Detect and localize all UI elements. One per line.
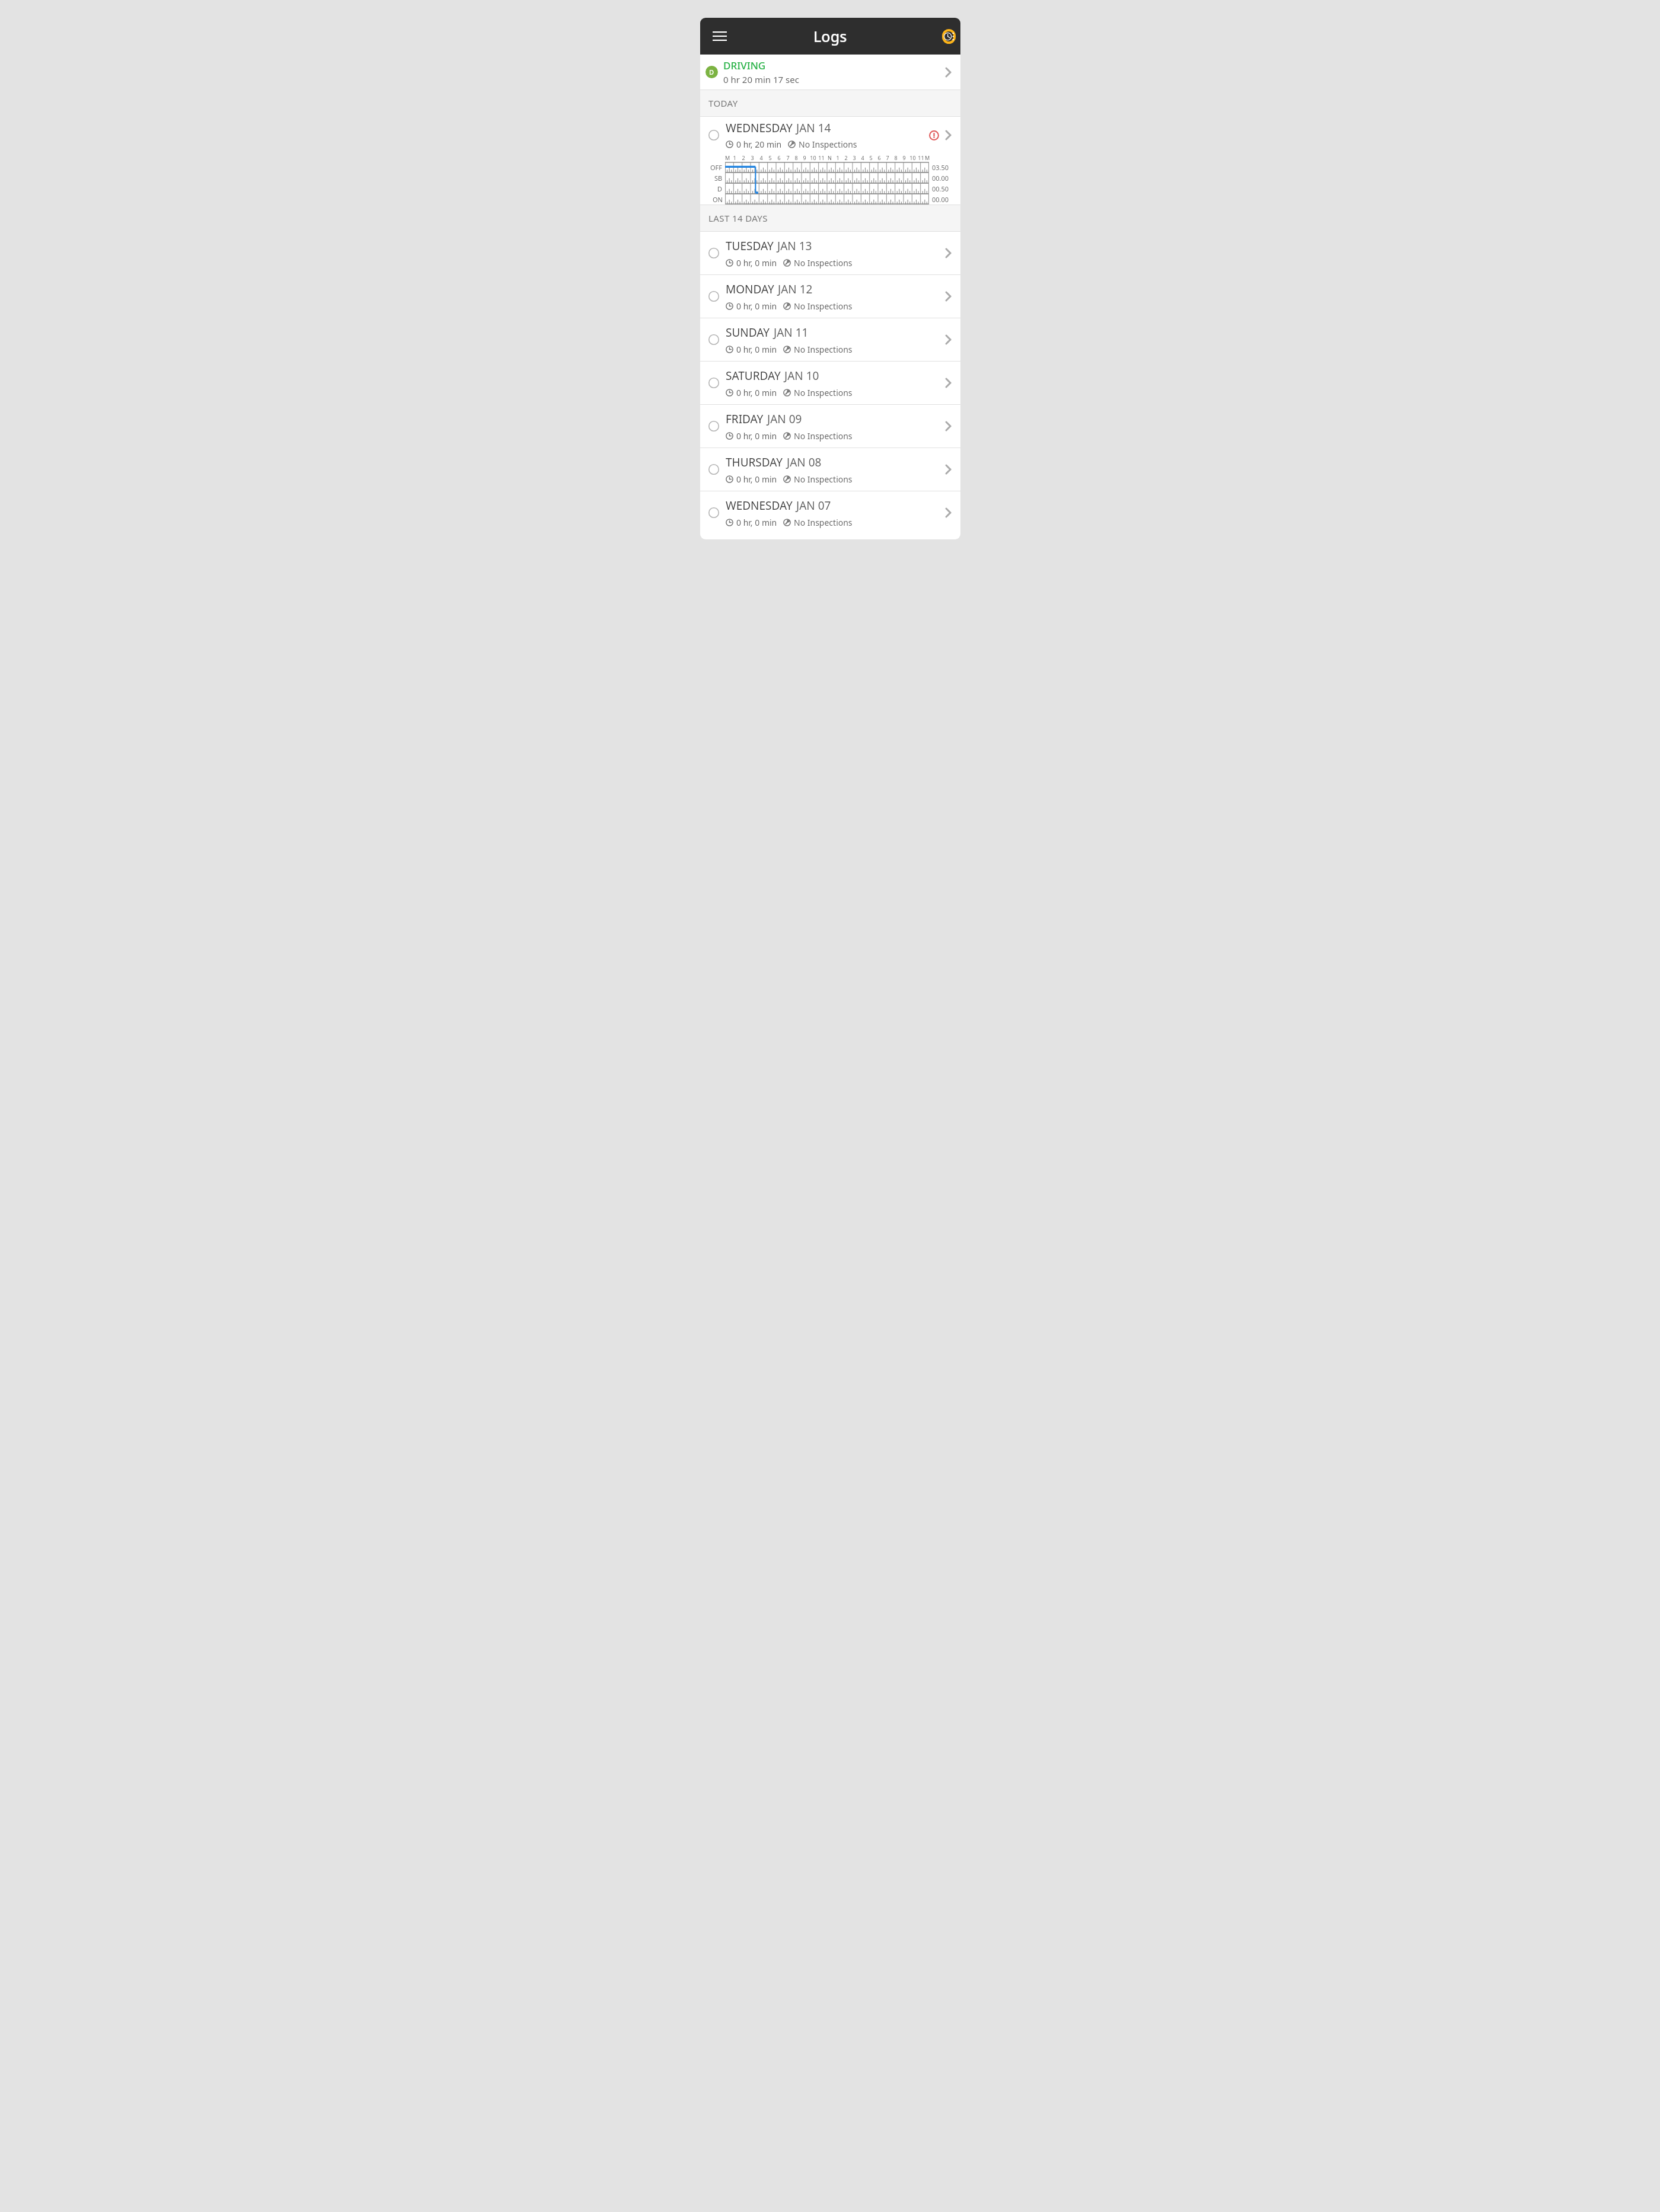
button[interactable]: Select day: [708, 130, 719, 140]
staticText: 00.50: [932, 184, 949, 193]
button[interactable]: Select day: [708, 507, 719, 518]
staticText: 7: [786, 154, 790, 161]
staticText: No Inspections: [794, 257, 853, 268]
button[interactable]: Select day: [700, 318, 960, 361]
staticText: 5: [768, 154, 772, 161]
staticText: 9: [902, 154, 906, 161]
staticText: TUESDAY: [726, 238, 774, 254]
button[interactable]: Select day: [708, 291, 719, 302]
staticText: No Inspections: [794, 430, 853, 442]
staticText: DRIVING: [723, 59, 766, 72]
staticText: JAN 13: [777, 238, 812, 254]
staticText: 2: [742, 154, 745, 161]
staticText: No Inspections: [794, 387, 853, 398]
button[interactable]: Select day: [700, 448, 960, 491]
staticText: SATURDAY: [726, 368, 781, 383]
staticText: SB: [714, 174, 723, 183]
staticText: No Inspections: [794, 301, 853, 312]
staticText: 0 hr, 0 min: [736, 430, 777, 442]
button[interactable]: Select day: [708, 248, 719, 258]
staticText: 0 hr, 0 min: [736, 387, 777, 398]
button[interactable]: Select day: [700, 405, 960, 447]
button[interactable]: Log history: [942, 29, 956, 44]
staticText: 7: [886, 154, 889, 161]
staticText: 11: [918, 154, 924, 161]
staticText: 8: [894, 154, 898, 161]
staticText: 4: [759, 154, 763, 161]
staticText: JAN 12: [778, 282, 813, 297]
staticText: JAN 08: [787, 455, 822, 470]
staticText: 00.00: [932, 195, 949, 204]
staticText: 10: [810, 154, 816, 161]
staticText: 00.00: [932, 174, 949, 183]
staticText: 0 hr, 0 min: [736, 517, 777, 528]
staticText: 0 hr, 0 min: [736, 474, 777, 485]
button[interactable]: Select day: [708, 378, 719, 388]
staticText: FRIDAY: [726, 411, 764, 427]
staticText: 0 hr, 0 min: [736, 301, 777, 312]
staticText: 10: [909, 154, 916, 161]
staticText: JAN 11: [774, 325, 809, 340]
staticText: 3: [751, 154, 754, 161]
staticText: TODAY: [708, 97, 738, 109]
staticText: D: [717, 184, 723, 193]
staticText: MONDAY: [726, 282, 774, 297]
button[interactable]: Select day: [700, 275, 960, 318]
staticText: JAN 07: [796, 498, 831, 513]
staticText: ON: [713, 195, 723, 204]
button[interactable]: Select day: [708, 421, 719, 431]
staticText: 0 hr, 0 min: [736, 344, 777, 355]
staticText: 2: [844, 154, 848, 161]
staticText: 6: [777, 154, 781, 161]
staticText: 0 hr 20 min 17 sec: [723, 73, 799, 85]
staticText: 5: [869, 154, 873, 161]
button[interactable]: Menu: [706, 23, 733, 50]
button[interactable]: Select day: [700, 232, 960, 274]
staticText: 11: [818, 154, 825, 161]
button[interactable]: D: [700, 55, 960, 89]
staticText: 3: [853, 154, 856, 161]
staticText: JAN 10: [784, 368, 819, 383]
staticText: No Inspections: [799, 139, 857, 150]
staticText: WEDNESDAY: [726, 120, 793, 136]
staticText: OFF: [710, 163, 723, 172]
staticText: 1: [733, 154, 736, 161]
staticText: JAN 14: [796, 120, 831, 136]
button[interactable]: Select day: [708, 464, 719, 475]
staticText: 8: [794, 154, 798, 161]
staticText: Logs: [813, 26, 847, 46]
staticText: No Inspections: [794, 517, 853, 528]
staticText: 03.50: [932, 163, 949, 172]
staticText: SUNDAY: [726, 325, 770, 340]
staticText: N: [828, 154, 832, 161]
button[interactable]: Select day: [708, 334, 719, 345]
button[interactable]: Select day: [700, 491, 960, 534]
staticText: WEDNESDAY: [726, 498, 793, 513]
staticText: No Inspections: [794, 344, 853, 355]
staticText: 9: [803, 154, 806, 161]
button[interactable]: Select day: [700, 362, 960, 404]
staticText: 4: [861, 154, 864, 161]
staticText: No Inspections: [794, 474, 853, 485]
staticText: M: [725, 154, 730, 161]
staticText: 1: [836, 154, 839, 161]
staticText: THURSDAY: [726, 455, 783, 470]
staticText: 6: [877, 154, 881, 161]
button[interactable]: Select day: [700, 117, 960, 204]
staticText: D: [709, 68, 714, 76]
staticText: JAN 09: [767, 411, 802, 427]
staticText: M: [925, 154, 929, 161]
staticText: 0 hr, 20 min: [736, 139, 782, 150]
staticText: 0 hr, 0 min: [736, 257, 777, 268]
staticText: LAST 14 DAYS: [708, 212, 768, 224]
